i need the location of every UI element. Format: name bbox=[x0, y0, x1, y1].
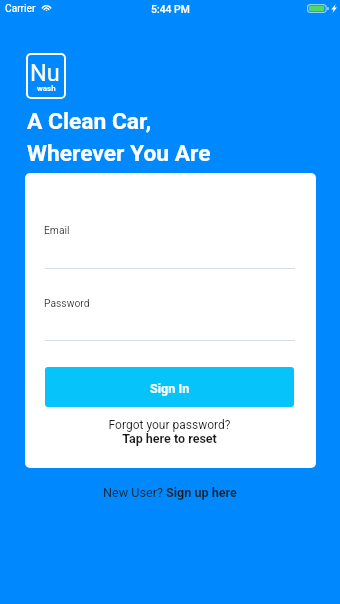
button[interactable]: New User? Sign up here bbox=[0, 485, 340, 505]
other: Charging bbox=[331, 4, 337, 13]
staticText: Email bbox=[44, 224, 70, 236]
staticText: Nu bbox=[30, 59, 60, 87]
staticText: Password bbox=[44, 297, 90, 309]
staticText: Wherever You Are bbox=[27, 140, 211, 167]
staticText: 5:44 PM bbox=[151, 3, 190, 15]
staticText: wash bbox=[37, 84, 56, 93]
staticText: Sign In bbox=[150, 381, 190, 396]
other: Wi-Fi bbox=[41, 4, 52, 11]
staticText: Tap here to reset bbox=[25, 431, 315, 446]
staticText: A Clean Car, bbox=[27, 108, 152, 135]
other: Battery charging bbox=[307, 4, 329, 13]
button[interactable]: Email bbox=[45, 221, 295, 269]
button[interactable]: Sign In bbox=[45, 367, 294, 407]
button[interactable]: Forgot your password? bbox=[25, 418, 315, 454]
button[interactable]: Password bbox=[45, 293, 295, 341]
staticText: Forgot your password? bbox=[25, 418, 315, 432]
staticText: New User? Sign up here bbox=[0, 485, 340, 500]
staticText: Carrier bbox=[5, 3, 36, 15]
